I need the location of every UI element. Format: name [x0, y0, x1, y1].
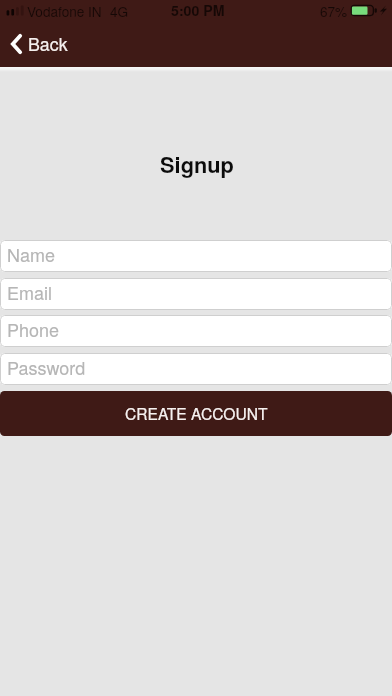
staticText: Name	[7, 241, 55, 267]
staticText: Phone	[7, 316, 60, 342]
staticText: CREATE ACCOUNT	[125, 402, 268, 424]
staticText: Email	[7, 279, 52, 305]
staticText: 4G	[110, 1, 129, 20]
button[interactable]: CREATE ACCOUNT	[0, 391, 392, 436]
button[interactable]: Name	[0, 240, 392, 272]
button[interactable]: Email	[0, 278, 392, 310]
staticText: Vodafone IN	[27, 1, 102, 20]
button[interactable]: Phone	[0, 315, 392, 347]
staticText: Password	[7, 354, 86, 380]
button[interactable]: Back	[0, 25, 80, 62]
staticText: 5:00 PM	[171, 0, 225, 20]
staticText: Back	[28, 31, 68, 56]
button[interactable]: Password	[0, 353, 392, 385]
staticText: 67%	[320, 1, 348, 20]
staticText: Signup	[1, 148, 392, 179]
